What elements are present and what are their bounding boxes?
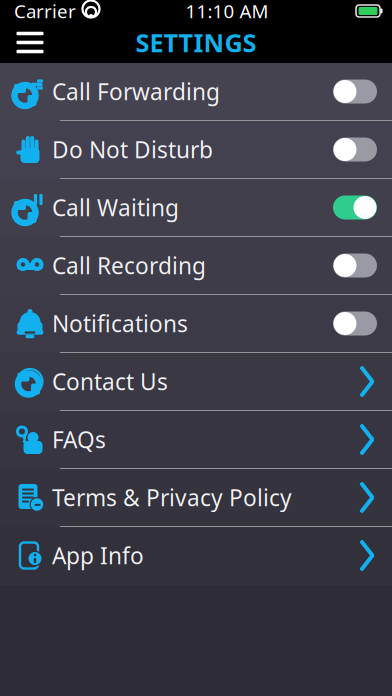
button[interactable]: FAQs — [0, 411, 392, 469]
staticText: Contact Us — [52, 366, 168, 396]
staticText: Do Not Disturb — [52, 134, 213, 164]
button[interactable]: Notifications — [0, 295, 392, 353]
button[interactable]: Menu — [8, 22, 52, 63]
button[interactable]: Do Not Disturb — [0, 121, 392, 179]
staticText: Call Recording — [52, 250, 206, 280]
staticText: SETTINGS — [135, 26, 256, 59]
staticText: 11:10 AM — [185, 0, 268, 23]
button[interactable]: Call Forwarding — [0, 63, 392, 121]
button[interactable]: App Info — [0, 527, 392, 585]
staticText: Terms & Privacy Policy — [52, 482, 292, 512]
button[interactable]: Terms & Privacy Policy — [0, 469, 392, 527]
button[interactable]: Call Waiting — [0, 179, 392, 237]
staticText: Carrier — [14, 0, 76, 23]
button[interactable]: Contact Us — [0, 353, 392, 411]
staticText: FAQs — [52, 424, 106, 454]
staticText: Call Waiting — [52, 192, 179, 222]
button[interactable]: Call Recording — [0, 237, 392, 295]
staticText: Call Forwarding — [52, 76, 220, 106]
staticText: App Info — [52, 540, 144, 570]
staticText: Notifications — [52, 308, 188, 338]
